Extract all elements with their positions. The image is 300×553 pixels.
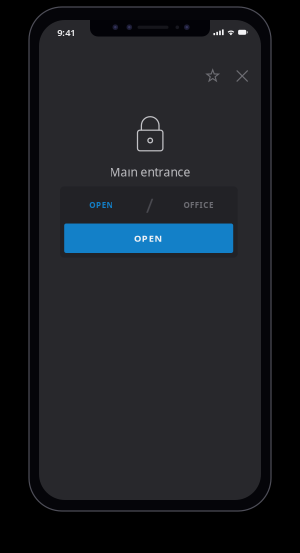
staticText: OPEN (89, 200, 115, 210)
button[interactable]: OPEN (64, 223, 233, 253)
staticText: 9:41 (57, 26, 75, 38)
staticText: OFFICE (183, 200, 215, 210)
staticText: Main entrance (109, 164, 190, 180)
button[interactable]: Close (230, 65, 255, 87)
button[interactable]: Favourite (200, 65, 225, 87)
button[interactable]: OPEN (65, 187, 139, 223)
button[interactable]: OFFICE (162, 187, 236, 223)
staticText: / (146, 192, 153, 218)
staticText: OPEN (134, 232, 164, 244)
